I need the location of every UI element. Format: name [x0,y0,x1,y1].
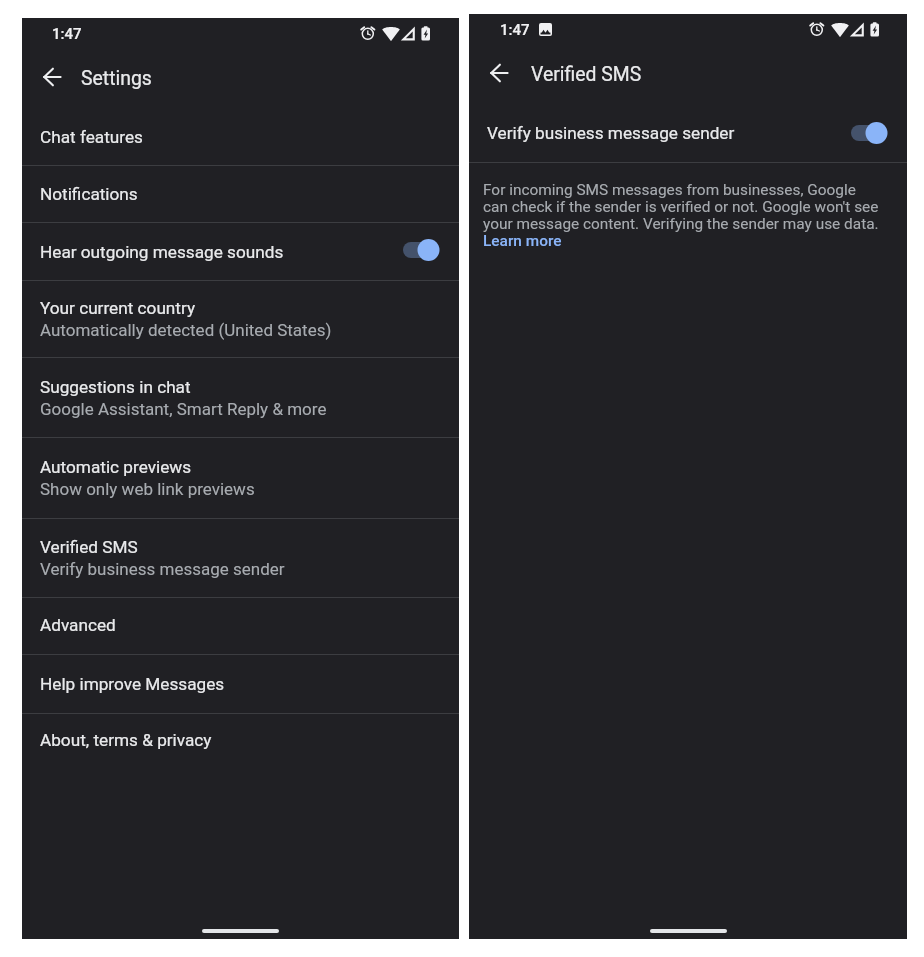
staticText: Advanced [40,615,116,635]
staticText: Automatically detected (United States) [40,320,332,340]
button[interactable]: Back [479,53,519,93]
button[interactable]: Chat features [22,108,459,165]
staticText: Hear outgoing message sounds [40,242,284,262]
staticText: Verify business message sender [40,559,285,579]
button[interactable]: Toggle on [851,122,887,144]
staticText: Verified SMS [40,537,138,557]
staticText: Verified SMS [531,63,642,86]
staticText: Verify business message sender [487,123,735,143]
button[interactable]: Advanced [22,598,459,654]
staticText: Automatic previews [40,457,192,477]
button[interactable]: Toggle on [403,239,439,261]
staticText: About, terms & privacy [40,730,212,750]
button[interactable]: Verified SMS [22,519,459,597]
staticText: Your current country [40,298,196,318]
staticText: 1:47 [500,21,530,39]
staticText: Learn more [483,232,562,249]
button[interactable]: About, terms & privacy [22,714,459,772]
staticText: Google Assistant, Smart Reply & more [40,399,327,419]
staticText: Help improve Messages [40,674,225,694]
staticText: 1:47 [52,25,82,43]
button[interactable]: Notifications [22,166,459,222]
button[interactable]: Back [32,57,72,97]
staticText: Chat features [40,127,143,147]
staticText: Notifications [40,184,138,204]
staticText: Settings [81,67,152,90]
button[interactable]: Help improve Messages [22,655,459,713]
button[interactable]: Automatic previews [22,438,459,518]
button[interactable]: Learn more [483,232,562,249]
staticText: Suggestions in chat [40,377,191,397]
button[interactable]: Verify business message sender [469,104,907,162]
staticText: Show only web link previews [40,479,255,499]
button[interactable]: Your current country [22,281,459,357]
staticText: For incoming SMS messages from businesse… [483,181,879,232]
button[interactable]: Hear outgoing message sounds [22,223,459,280]
button[interactable]: Suggestions in chat [22,358,459,437]
